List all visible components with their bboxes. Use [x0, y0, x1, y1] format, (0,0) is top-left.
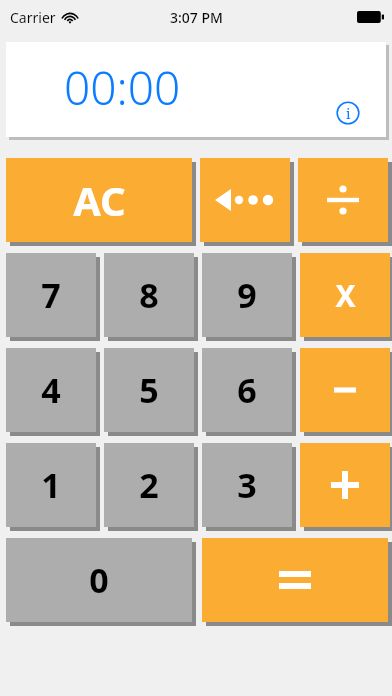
staticText: 1 — [41, 462, 61, 508]
staticText: 2 — [139, 462, 159, 508]
staticText: 5 — [139, 367, 159, 413]
staticText: AC — [73, 173, 126, 227]
staticText: X — [335, 275, 356, 316]
button[interactable]: 6 — [202, 348, 292, 432]
staticText: 7 — [41, 272, 61, 318]
button[interactable]: 4 — [6, 348, 96, 432]
button[interactable]: 5 — [104, 348, 194, 432]
button[interactable]: Minus — [300, 348, 390, 432]
staticText: Carrier — [10, 8, 56, 27]
button[interactable]: 1 — [6, 443, 96, 527]
button[interactable]: Info — [336, 101, 360, 125]
button[interactable]: 8 — [104, 253, 194, 337]
button[interactable]: 2 — [104, 443, 194, 527]
staticText: 00:00 — [64, 56, 181, 119]
staticText: 3 — [237, 462, 257, 508]
staticText: i — [346, 104, 351, 123]
button[interactable]: 3 — [202, 443, 292, 527]
staticText: 3:07 PM — [170, 8, 223, 27]
staticText: 8 — [139, 272, 159, 318]
button[interactable]: 0 — [6, 538, 192, 622]
staticText: 0 — [89, 557, 109, 603]
button[interactable]: Plus — [300, 443, 390, 527]
staticText: 4 — [41, 367, 61, 413]
button[interactable]: AC — [6, 158, 192, 242]
button[interactable]: Equals — [202, 538, 388, 622]
staticText: 6 — [237, 367, 257, 413]
staticText: 9 — [237, 272, 257, 318]
button[interactable]: 9 — [202, 253, 292, 337]
button[interactable]: Backspace — [200, 158, 290, 242]
button[interactable]: X — [300, 253, 390, 337]
button[interactable]: Divide — [298, 158, 388, 242]
button[interactable]: 7 — [6, 253, 96, 337]
